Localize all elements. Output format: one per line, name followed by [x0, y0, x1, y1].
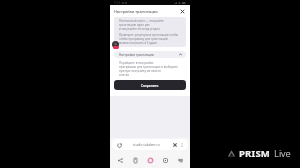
- staticText: PRISM: [239, 147, 271, 160]
- button[interactable]: Tabs: [160, 155, 170, 165]
- button[interactable]: Tracking protection: [171, 141, 179, 149]
- staticText: Постоянный совет — настройте трансляцию …: [119, 19, 164, 31]
- staticText: Настройки трансляции: [119, 53, 154, 57]
- button[interactable]: More options: [179, 142, 185, 148]
- button[interactable]: Bookmarks: [130, 155, 140, 165]
- staticText: Live: [274, 147, 291, 160]
- staticText: Сохранить: [141, 83, 159, 87]
- button[interactable]: Reload: [115, 141, 123, 149]
- button[interactable]: Close: [179, 8, 186, 15]
- staticText: Проверьте регулярные трансляции чтобы чт…: [119, 33, 179, 45]
- button[interactable]: Сохранить: [114, 80, 186, 90]
- staticText: 9:14: [114, 1, 120, 5]
- button[interactable]: Настройки трансляции: [114, 51, 186, 58]
- staticText: Настройки трансляции: [114, 9, 158, 14]
- button[interactable]: Menu: [175, 155, 185, 165]
- staticText: studio.subdom.ru: [133, 143, 160, 147]
- staticText: Перейдите в настройки программы для тран…: [119, 61, 178, 77]
- button[interactable]: Share: [115, 155, 125, 165]
- button[interactable]: Home: [145, 155, 155, 165]
- button[interactable]: Reload: [112, 139, 188, 150]
